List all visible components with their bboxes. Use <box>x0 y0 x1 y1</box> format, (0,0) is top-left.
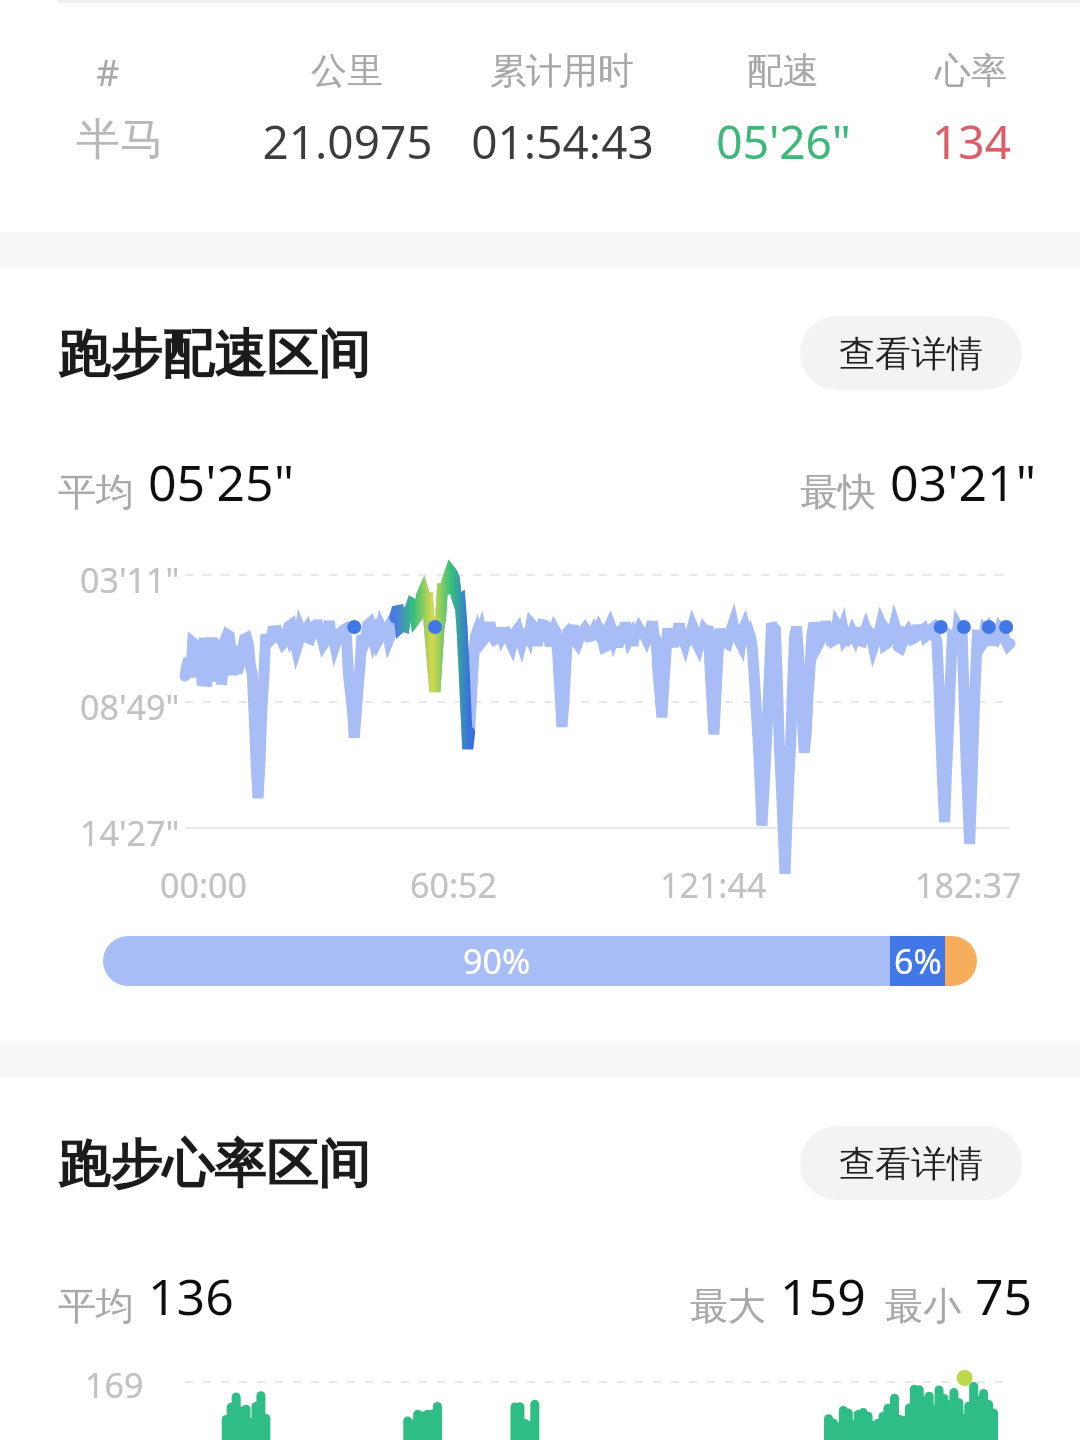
staticText: 最快 <box>800 468 876 516</box>
staticText: 60:52 <box>410 862 497 908</box>
staticText: 21.0975 <box>262 110 433 173</box>
staticText: 公里 <box>311 48 383 93</box>
staticText: 08'49" <box>80 684 180 730</box>
staticText: 159 <box>780 1262 866 1330</box>
staticText: 半马 <box>76 112 164 167</box>
staticText: 心率 <box>935 48 1007 93</box>
staticText: 169 <box>85 1362 144 1408</box>
staticText: 查看详情 <box>839 1141 983 1186</box>
staticText: 平均 <box>58 1282 134 1330</box>
staticText: 05'26" <box>716 110 851 173</box>
staticText: 跑步配速区间 <box>58 322 370 388</box>
staticText: 00:00 <box>160 862 247 908</box>
staticText: 75 <box>975 1262 1033 1330</box>
staticText: 跑步心率区间 <box>58 1132 370 1198</box>
staticText: 最大 <box>690 1282 766 1330</box>
staticText: 134 <box>932 110 1011 173</box>
staticText: 121:44 <box>660 862 767 908</box>
staticText: 03'21" <box>890 448 1037 516</box>
staticText: 配速 <box>747 48 819 93</box>
staticText: 14'27" <box>80 810 180 856</box>
button[interactable]: 查看详情 <box>800 316 1022 390</box>
staticText: 03'11" <box>80 557 180 603</box>
staticText: 6% <box>894 938 942 984</box>
staticText: 查看详情 <box>839 331 983 376</box>
staticText: 136 <box>148 1262 234 1330</box>
staticText: # <box>96 48 120 97</box>
staticText: 平均 <box>58 468 134 516</box>
button[interactable]: 查看详情 <box>800 1126 1022 1200</box>
staticText: 05'25" <box>148 448 295 516</box>
staticText: 最小 <box>885 1282 961 1330</box>
staticText: 累计用时 <box>490 48 634 93</box>
staticText: 90% <box>463 938 531 984</box>
button[interactable]: 90% <box>103 936 977 986</box>
staticText: 182:37 <box>915 862 1022 908</box>
staticText: 01:54:43 <box>471 110 654 173</box>
